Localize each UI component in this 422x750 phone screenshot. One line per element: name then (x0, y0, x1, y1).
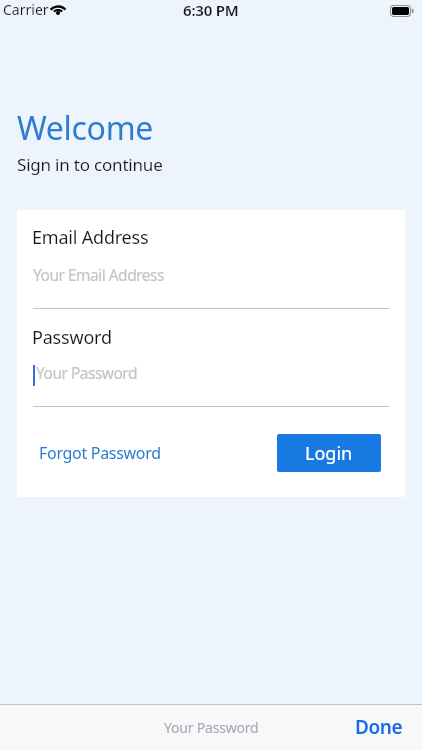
button[interactable]: Done (355, 714, 403, 740)
staticText: Welcome (17, 106, 154, 150)
button[interactable]: Forgot Password (39, 434, 161, 472)
staticText: 6:30 PM (183, 0, 239, 20)
staticText: Your Password (36, 362, 137, 383)
staticText: Carrier (3, 0, 49, 19)
staticText: Your Password (164, 718, 259, 737)
staticText: Forgot Password (39, 442, 161, 464)
staticText: Email Address (32, 225, 149, 250)
staticText: Password (32, 325, 112, 350)
staticText: Login (305, 441, 353, 466)
staticText: Your Email Address (33, 264, 164, 285)
button[interactable]: Login (277, 434, 381, 472)
staticText: Done (355, 714, 403, 740)
staticText: Sign in to continue (17, 153, 163, 176)
